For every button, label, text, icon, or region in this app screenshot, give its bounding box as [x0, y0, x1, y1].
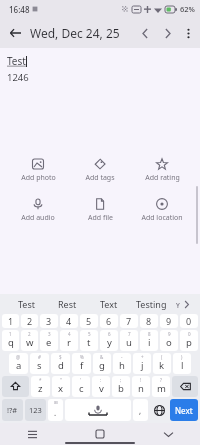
button[interactable]: 3 — [40, 314, 58, 328]
button[interactable]: Shift — [2, 376, 29, 397]
button[interactable]: 4 — [60, 314, 78, 328]
button[interactable]: 0 — [180, 314, 198, 328]
button[interactable]: Home — [90, 424, 110, 444]
button[interactable]: Next — [170, 399, 198, 421]
button[interactable]: ; — [112, 376, 130, 397]
staticText: v — [99, 382, 104, 395]
button[interactable]: Test — [6, 294, 47, 314]
staticText: Rest — [58, 298, 77, 310]
staticText: t — [87, 336, 91, 349]
staticText: & — [100, 354, 104, 360]
button[interactable]: 2 — [21, 314, 38, 328]
staticText: q — [8, 336, 14, 349]
button[interactable]: Text — [88, 294, 130, 314]
button[interactable]: 5 — [80, 330, 98, 351]
button[interactable]: 123 — [25, 399, 46, 421]
button[interactable]: ⊞ — [48, 399, 63, 421]
button[interactable]: @ — [9, 353, 28, 374]
staticText: 2 — [27, 315, 33, 327]
button[interactable]: Rest — [47, 294, 88, 314]
staticText: a — [16, 359, 22, 372]
button[interactable]: 9 — [160, 314, 178, 328]
button[interactable]: # — [30, 353, 49, 374]
staticText: u — [126, 336, 132, 349]
staticText: Wed, Dec 24, 25 — [30, 25, 120, 41]
button[interactable]: Backspace — [172, 376, 198, 397]
button[interactable]: 7 — [120, 330, 138, 351]
staticText: k — [159, 359, 165, 372]
button[interactable]: 8 — [140, 330, 158, 351]
button[interactable]: 7 — [120, 314, 138, 328]
button[interactable]: More suggestions — [172, 294, 194, 314]
button[interactable]: & — [93, 353, 111, 374]
staticText: - — [121, 354, 123, 360]
button[interactable]: 1 — [2, 314, 19, 328]
button[interactable]: 3 — [40, 330, 58, 351]
button[interactable]: Space — [65, 399, 131, 421]
staticText: ⊞ — [54, 400, 58, 405]
button[interactable]: Previous — [134, 22, 156, 44]
staticText: 1 — [9, 331, 12, 337]
button[interactable]: Next — [156, 22, 178, 44]
button[interactable]: 6 — [100, 314, 118, 328]
button[interactable]: 1 — [2, 330, 19, 351]
button[interactable]: " — [52, 376, 70, 397]
button[interactable]: - — [113, 353, 131, 374]
staticText: ) — [181, 354, 183, 360]
button[interactable]: Recents — [22, 424, 42, 444]
button[interactable]: 4 — [60, 330, 78, 351]
button[interactable]: 2 — [21, 330, 38, 351]
staticText: 5 — [88, 331, 91, 337]
button[interactable]: Add file — [69, 196, 131, 225]
staticText: c — [79, 382, 84, 395]
button[interactable]: Add photo — [7, 156, 69, 185]
button[interactable]: 9 — [160, 330, 178, 351]
staticText: b — [118, 382, 124, 395]
staticText: 7 — [128, 331, 131, 337]
button[interactable]: + — [133, 353, 151, 374]
staticText: , — [139, 405, 142, 416]
staticText: ? — [160, 377, 162, 383]
staticText: . — [54, 407, 57, 418]
button[interactable]: Back — [158, 424, 178, 444]
button[interactable]: ) — [173, 353, 191, 374]
button[interactable]: : — [92, 376, 110, 397]
staticText: 9 — [166, 315, 172, 327]
button[interactable]: 8 — [140, 314, 158, 328]
button[interactable]: , — [133, 399, 148, 421]
button[interactable]: 5 — [80, 314, 98, 328]
staticText: @ — [16, 354, 21, 360]
button[interactable]: ( — [153, 353, 171, 374]
button[interactable]: Change language — [150, 399, 168, 421]
button[interactable]: Back — [4, 22, 26, 44]
staticText: o — [166, 336, 172, 349]
button[interactable]: 0 — [180, 330, 198, 351]
staticText: 0 — [186, 315, 192, 327]
button[interactable]: ? — [152, 376, 170, 397]
staticText: * — [39, 377, 42, 383]
button[interactable]: 6 — [100, 330, 118, 351]
staticText: 5 — [86, 315, 92, 327]
button[interactable]: $ — [51, 353, 70, 374]
button[interactable]: Add location — [131, 196, 193, 225]
button[interactable]: !?# — [2, 399, 23, 421]
button[interactable]: More options — [178, 23, 198, 43]
staticText: y — [107, 336, 112, 349]
staticText: + — [141, 354, 144, 360]
button[interactable]: Add audio — [7, 196, 69, 225]
staticText: 0 — [188, 331, 191, 337]
staticText: i — [148, 336, 151, 349]
staticText: Testing — [136, 298, 167, 310]
staticText: 1246 — [7, 71, 29, 84]
button[interactable]: Add rating — [131, 156, 193, 185]
staticText: ʏ — [176, 299, 180, 310]
staticText: m — [157, 382, 166, 395]
staticText: x — [58, 382, 64, 395]
button[interactable]: ! — [132, 376, 150, 397]
button[interactable]: ' — [72, 376, 90, 397]
staticText: s — [37, 359, 42, 372]
button[interactable]: Add tags — [69, 156, 131, 185]
button[interactable]: * — [31, 376, 50, 397]
button[interactable]: Testing — [130, 294, 172, 314]
button[interactable]: % — [72, 353, 91, 374]
